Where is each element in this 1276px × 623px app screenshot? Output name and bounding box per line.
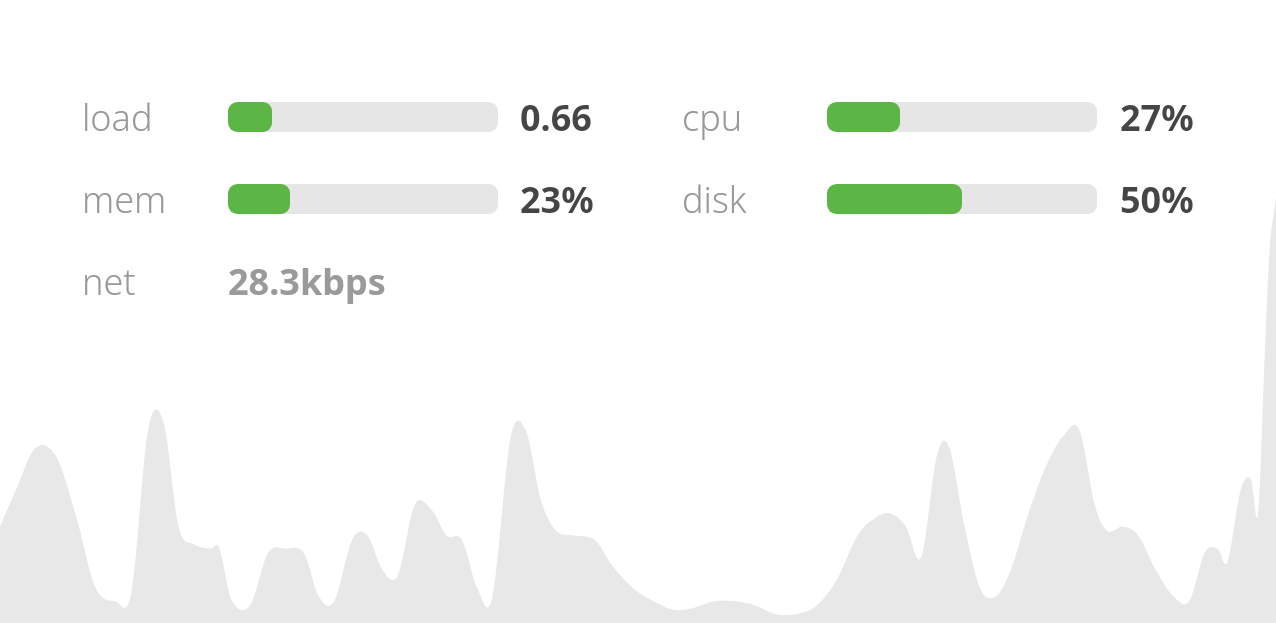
staticText: 23%	[520, 175, 594, 224]
button[interactable]: cpu	[682, 89, 1270, 145]
staticText: 27%	[1120, 93, 1194, 142]
staticText: net	[82, 257, 228, 306]
staticText: disk	[682, 175, 747, 224]
staticText: 28.3kbps	[228, 257, 386, 306]
button[interactable]: disk	[682, 171, 1270, 227]
staticText: 50%	[1120, 175, 1194, 224]
button[interactable]: net	[82, 254, 502, 308]
staticText: cpu	[682, 93, 743, 142]
staticText: mem	[82, 175, 167, 224]
button[interactable]: load	[82, 89, 670, 145]
button[interactable]: mem	[82, 171, 670, 227]
staticText: 0.66	[520, 93, 592, 142]
staticText: load	[82, 93, 153, 142]
